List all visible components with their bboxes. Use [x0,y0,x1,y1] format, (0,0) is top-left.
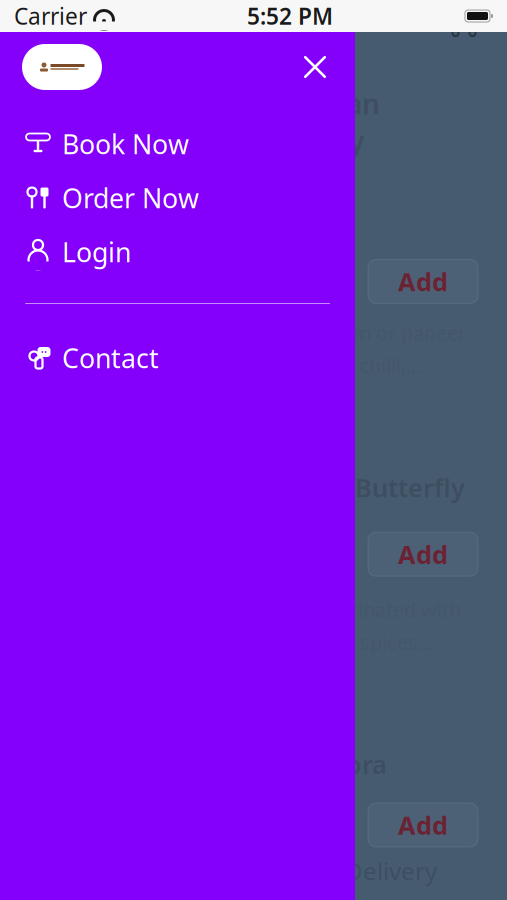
button[interactable]: Login [0,225,355,279]
staticText: Order Now [62,180,199,216]
button[interactable]: Contact [0,331,355,385]
button[interactable]: Close menu [293,45,337,89]
button[interactable]: Add [368,259,478,303]
button[interactable]: Cart, 0 items [435,0,491,43]
staticText: chicken or paneer [300,319,466,346]
staticText: Add [398,265,448,298]
staticText: Carrier [14,1,87,31]
staticText: 0 [473,0,481,17]
staticText: Chicken Butterfly [250,471,465,504]
button[interactable]: Book Now [0,117,355,171]
staticText: Free Delivery [290,855,437,887]
button[interactable]: Restaurant logo [22,44,102,90]
staticText: 5:52 PM [247,1,333,31]
staticText: green chilli,... [300,352,421,379]
button[interactable]: Add [368,532,478,576]
staticText: marinated with [320,596,461,623]
button[interactable]: Order Now [0,171,355,225]
staticText: 30min approx [290,891,438,900]
staticText: Himalayan Speciality [235,85,380,159]
button[interactable]: Add [368,803,478,847]
staticText: Pakora [300,747,387,781]
staticText: Contact [62,340,159,376]
staticText: and spices... [320,629,433,655]
staticText: Add [398,808,448,842]
staticText: Login [62,234,131,270]
staticText: Add [398,537,448,571]
staticText: Book Now [62,126,189,162]
